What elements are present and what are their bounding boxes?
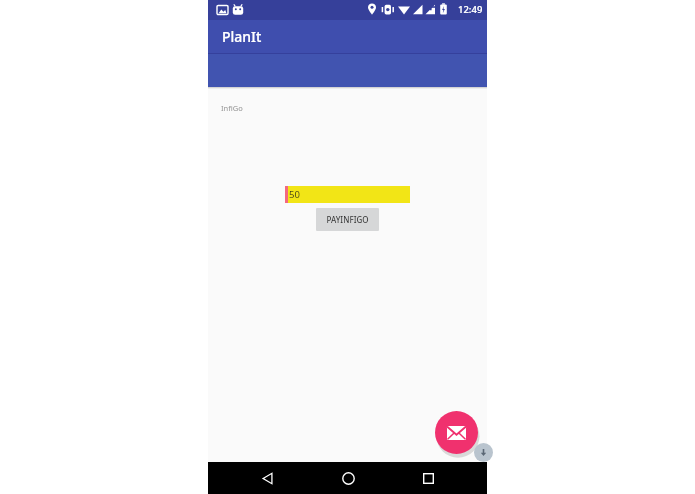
staticText: 12:49 [458, 3, 483, 16]
staticText: PlanIt [222, 27, 262, 46]
button[interactable]: Recent apps [406, 462, 450, 494]
button[interactable]: PlanIt [208, 20, 487, 53]
staticText: 50 [289, 188, 300, 201]
button[interactable]: PAYINFIGO [316, 208, 379, 231]
staticText: PAYINFIGO [326, 214, 369, 225]
button[interactable]: Home [326, 462, 370, 494]
button[interactable]: Send message [435, 411, 478, 454]
staticText: InfiGo [221, 103, 243, 113]
button[interactable]: Download [474, 443, 493, 462]
button[interactable]: 50 [285, 186, 410, 203]
button[interactable]: Back [245, 462, 289, 494]
